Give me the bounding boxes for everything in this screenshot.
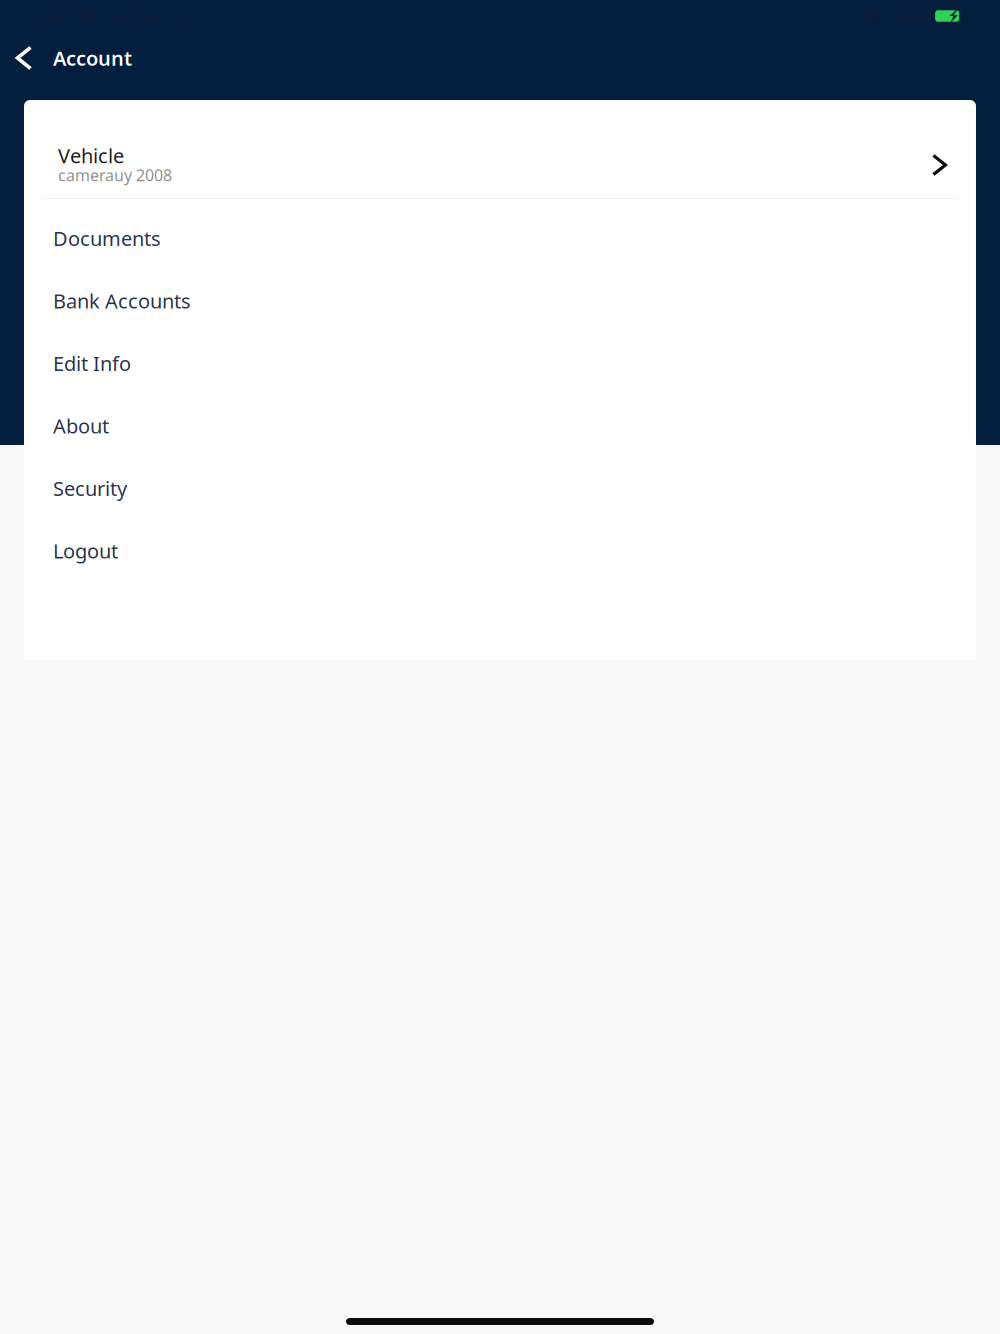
- button[interactable]: Security: [24, 457, 976, 519]
- staticText: Documents: [53, 225, 161, 252]
- staticText: About: [53, 412, 109, 439]
- staticText: Logout: [53, 537, 118, 564]
- staticText: Sat Mar 14: [104, 5, 185, 27]
- button[interactable]: Logout: [24, 519, 976, 582]
- button[interactable]: Vehicle: [24, 100, 976, 198]
- staticText: Edit Info: [53, 350, 131, 377]
- button[interactable]: Edit Info: [24, 332, 976, 394]
- staticText: Account: [53, 45, 132, 71]
- button[interactable]: Documents: [24, 207, 976, 269]
- button[interactable]: Back: [7, 36, 41, 80]
- staticText: Vehicle: [58, 142, 124, 169]
- staticText: camerauy 2008: [58, 164, 172, 186]
- staticText: Security: [53, 475, 127, 502]
- staticText: 4:56 PM: [33, 5, 93, 27]
- staticText: 76%: [893, 5, 925, 27]
- staticText: Bank Accounts: [53, 287, 191, 314]
- button[interactable]: Bank Accounts: [24, 269, 976, 332]
- button[interactable]: About: [24, 394, 976, 457]
